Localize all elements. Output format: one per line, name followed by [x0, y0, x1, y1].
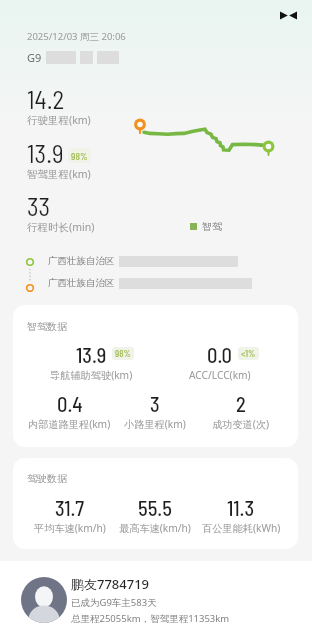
staticText: 0.0 [207, 342, 232, 367]
button[interactable]: Collapse [275, 2, 301, 28]
staticText: 98% [71, 150, 88, 161]
staticText: 平均车速(km/h) [34, 521, 106, 535]
staticText: 导航辅助驾驶(km) [50, 368, 133, 382]
staticText: 小路里程(km) [124, 417, 186, 431]
staticText: ACC/LCC(km) [189, 368, 251, 382]
staticText: 总里程25055km，智驾里程11353km [71, 612, 230, 625]
staticText: 行驶里程(km) [27, 113, 91, 127]
button[interactable]: 鹏友7784719 [0, 561, 312, 640]
staticText: 鹏友7784719 [71, 575, 150, 593]
staticText: 55.5 [138, 495, 172, 520]
staticText: 0.4 [57, 391, 83, 416]
staticText: 14.2 [27, 84, 65, 114]
staticText: 2 [236, 391, 246, 416]
staticText: 最高车速(km/h) [119, 521, 191, 535]
staticText: 11.3 [227, 495, 255, 520]
staticText: 2025/12/03 周三 20:06 [27, 30, 126, 43]
staticText: 驾驶数据 [27, 472, 67, 485]
staticText: 智驾里程(km) [27, 167, 91, 181]
staticText: 已成为G9车主583天 [71, 596, 157, 609]
staticText: 13.9 [27, 138, 64, 168]
staticText: 行程时长(min) [27, 220, 95, 234]
staticText: 13.9 [76, 342, 107, 367]
staticText: 百公里能耗(kWh) [202, 521, 281, 535]
staticText: G9 [27, 50, 42, 65]
staticText: 广西壮族自治区 [48, 255, 115, 267]
staticText: 31.7 [55, 495, 85, 520]
staticText: 98% [115, 348, 131, 359]
staticText: 3 [150, 391, 160, 416]
staticText: 成功变道(次) [212, 417, 270, 431]
staticText: <1% [241, 348, 256, 359]
staticText: 智驾数据 [27, 320, 67, 333]
staticText: 内部道路里程(km) [28, 417, 111, 431]
staticText: 33 [27, 191, 51, 221]
staticText: 智驾 [202, 220, 222, 233]
staticText: 广西壮族自治区 [48, 277, 115, 289]
